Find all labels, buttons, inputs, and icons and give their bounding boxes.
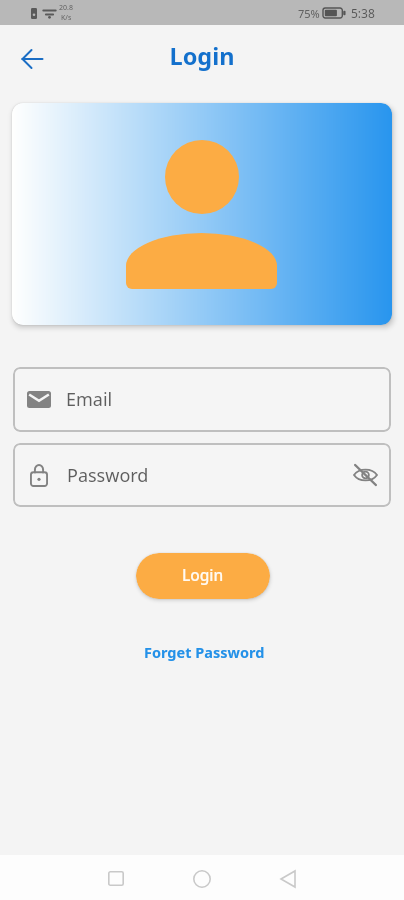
staticText: 20.8	[59, 3, 73, 13]
staticText: 5:38	[351, 5, 375, 21]
button[interactable]: Login	[136, 553, 270, 599]
staticText: Login	[0, 40, 404, 72]
staticText: Login	[182, 564, 224, 585]
staticText: Email	[66, 387, 113, 412]
button[interactable]: Email	[13, 367, 391, 432]
button[interactable]: Back	[10, 37, 53, 80]
staticText: Forget Password	[144, 642, 265, 662]
button[interactable]: Toggle password visibility	[349, 459, 381, 491]
button[interactable]: Back	[264, 856, 312, 900]
button[interactable]: Recents	[92, 856, 140, 900]
staticText: 75%	[298, 6, 320, 21]
button[interactable]: Home	[178, 856, 226, 900]
staticText: Password	[67, 463, 149, 488]
button[interactable]: Forget Password	[136, 637, 273, 667]
button[interactable]: Password	[13, 443, 391, 507]
staticText: K/s	[61, 13, 72, 23]
